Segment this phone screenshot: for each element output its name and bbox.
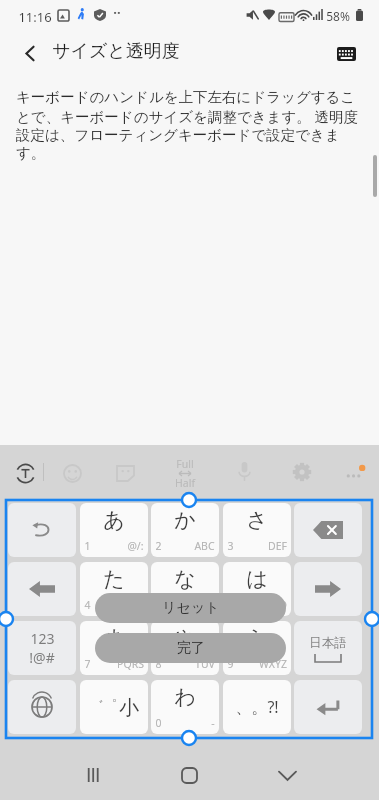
staticText: 58% xyxy=(326,8,350,24)
other: Change language xyxy=(31,696,53,718)
staticText: とで、キーボードのサイズを調整できます。 透明度 xyxy=(16,106,359,126)
button[interactable]: た xyxy=(80,562,148,616)
staticText: 2 xyxy=(155,539,162,553)
staticText: 1 xyxy=(84,539,91,553)
button[interactable]: は xyxy=(223,562,291,616)
staticText: か xyxy=(174,507,196,533)
staticText: や xyxy=(174,625,196,651)
staticText: ま xyxy=(103,625,125,651)
other: Move cursor left xyxy=(29,581,55,597)
staticText: 日本語 xyxy=(309,635,347,651)
staticText: キーボードのハンドルを上下左右にドラッグするこ xyxy=(16,88,356,106)
staticText: - xyxy=(211,716,215,730)
button[interactable]: More options xyxy=(340,458,370,488)
staticText: 3 xyxy=(227,539,234,553)
button[interactable]: ゛゜ xyxy=(80,680,148,734)
staticText: 、。?! xyxy=(235,696,279,718)
staticText: 9 xyxy=(227,657,234,671)
staticText: @/: xyxy=(127,539,144,553)
button[interactable]: Backspace xyxy=(294,503,362,557)
other: Undo xyxy=(30,518,54,542)
button[interactable]: ら xyxy=(223,621,291,675)
button[interactable]: Home xyxy=(154,750,224,800)
button[interactable]: な xyxy=(151,562,219,616)
staticText: す。 xyxy=(16,144,46,162)
staticText: JKL xyxy=(200,598,215,612)
staticText: DEF xyxy=(268,539,287,553)
staticText: 設定は、フローティングキーボードで設定できま xyxy=(16,126,340,144)
button[interactable]: Enter xyxy=(294,680,362,734)
staticText: TUV xyxy=(195,657,215,671)
staticText: ら xyxy=(246,625,268,651)
button[interactable]: あ xyxy=(80,503,148,557)
button[interactable]: 、。?! xyxy=(223,680,291,734)
staticText: な xyxy=(174,566,196,592)
button[interactable]: Full or half width xyxy=(165,455,205,491)
staticText: ABC xyxy=(194,539,215,553)
other: Move cursor right xyxy=(315,581,341,597)
button[interactable]: Settings xyxy=(288,458,316,486)
staticText: 8 xyxy=(155,657,162,671)
staticText: さ xyxy=(246,507,268,533)
button[interactable]: 日本語 xyxy=(294,621,362,675)
button[interactable]: Move cursor right xyxy=(294,562,362,616)
button[interactable]: Hide keyboard xyxy=(252,750,322,800)
staticText: 123 xyxy=(30,629,55,648)
button[interactable]: Emoji xyxy=(58,459,86,487)
staticText: あ xyxy=(103,507,125,533)
other: Enter xyxy=(315,698,341,716)
other: Backspace xyxy=(313,521,343,539)
button[interactable]: リセット xyxy=(95,593,286,623)
button[interactable]: ま xyxy=(80,621,148,675)
staticText: WXYZ xyxy=(259,657,287,671)
staticText: Full xyxy=(176,457,194,471)
staticText: 0 xyxy=(155,716,162,730)
button[interactable]: わ xyxy=(151,680,219,734)
staticText: 7 xyxy=(84,657,91,671)
button[interactable]: Translate xyxy=(10,458,40,488)
staticText: 小 xyxy=(119,695,139,720)
button[interactable]: Back xyxy=(14,37,46,69)
button[interactable]: Keyboard settings xyxy=(331,39,361,69)
staticText: 完了 xyxy=(177,639,205,657)
staticText: Half xyxy=(175,476,195,490)
staticText: わ xyxy=(174,684,196,710)
button[interactable]: Change language xyxy=(8,680,76,734)
staticText: !@# xyxy=(29,648,55,667)
button[interactable]: Undo xyxy=(8,503,76,557)
staticText: 11:16 xyxy=(18,8,52,26)
staticText: リセット xyxy=(162,599,220,617)
button[interactable]: Stickers xyxy=(111,459,139,487)
staticText: 4 xyxy=(84,598,91,612)
staticText: PQRS xyxy=(117,657,144,671)
button[interactable]: Move cursor left xyxy=(8,562,76,616)
button[interactable]: 123 xyxy=(8,621,76,675)
staticText: サイズと透明度 xyxy=(52,40,180,63)
button[interactable]: 完了 xyxy=(95,633,286,663)
button[interactable]: か xyxy=(151,503,219,557)
button[interactable]: さ xyxy=(223,503,291,557)
staticText: ゛゜ xyxy=(90,697,117,713)
button[interactable]: Voice input xyxy=(230,458,258,486)
button[interactable]: や xyxy=(151,621,219,675)
staticText: た xyxy=(103,566,125,592)
staticText: ·· xyxy=(113,3,121,21)
staticText: は xyxy=(246,566,268,592)
staticText: MNO xyxy=(261,598,287,612)
button[interactable]: Recents xyxy=(58,750,128,800)
